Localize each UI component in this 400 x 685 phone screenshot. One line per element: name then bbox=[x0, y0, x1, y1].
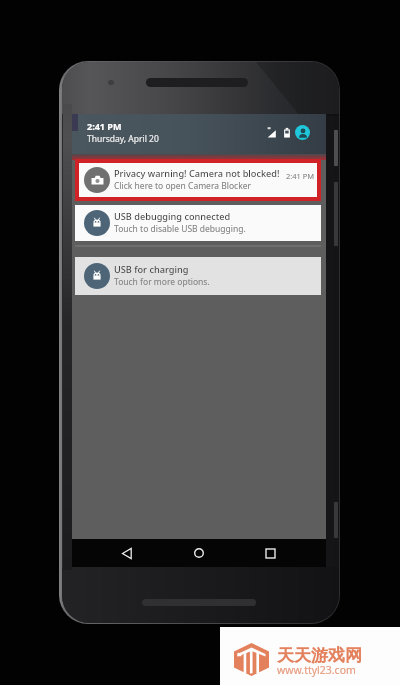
staticText: USB debugging connected bbox=[114, 210, 231, 223]
staticText: www.ttyl23.com bbox=[277, 663, 356, 677]
staticText: Privacy warning! Camera not blocked! bbox=[114, 167, 280, 180]
button[interactable]: Privacy warning! Camera not blocked! bbox=[75, 159, 321, 201]
staticText: Touch for more options. bbox=[114, 276, 210, 288]
staticText: 2:41 PM bbox=[286, 171, 315, 181]
button[interactable]: Recent apps bbox=[254, 539, 286, 567]
button[interactable]: Back bbox=[111, 539, 143, 567]
button[interactable]: USB for charging bbox=[75, 257, 321, 295]
button[interactable]: USB debugging connected bbox=[75, 205, 321, 241]
staticText: 天天游戏网 bbox=[277, 645, 362, 666]
staticText: Click here to open Camera Blocker bbox=[114, 180, 252, 192]
staticText: Thursday, April 20 bbox=[87, 133, 159, 145]
staticText: 2:41 PM bbox=[87, 120, 122, 132]
staticText: Touch to disable USB debugging. bbox=[114, 223, 246, 235]
staticText: USB for charging bbox=[114, 263, 189, 276]
button[interactable]: Home bbox=[183, 539, 215, 567]
